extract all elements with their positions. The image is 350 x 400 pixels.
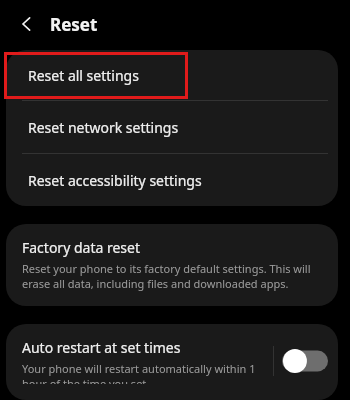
button[interactable]: Factory data reset <box>6 224 338 306</box>
staticText: Reset accessibility settings <box>28 171 202 190</box>
button[interactable]: Reset all settings <box>6 50 338 100</box>
staticText: Reset all settings <box>28 66 139 85</box>
button[interactable]: Reset accessibility settings <box>6 154 338 206</box>
staticText: Reset network settings <box>28 118 179 137</box>
staticText: Reset your phone to its factory default … <box>22 261 324 291</box>
staticText: Auto restart at set times <box>22 338 181 357</box>
staticText: Your phone will restart automatically wi… <box>22 361 267 384</box>
button[interactable]: Auto restart at set times <box>6 324 338 400</box>
button[interactable]: Auto restart at set times toggle <box>282 348 328 374</box>
button[interactable]: Reset network settings <box>6 101 338 153</box>
button[interactable]: Back <box>14 11 40 37</box>
staticText: Reset <box>50 13 98 36</box>
staticText: Factory data reset <box>22 238 140 257</box>
